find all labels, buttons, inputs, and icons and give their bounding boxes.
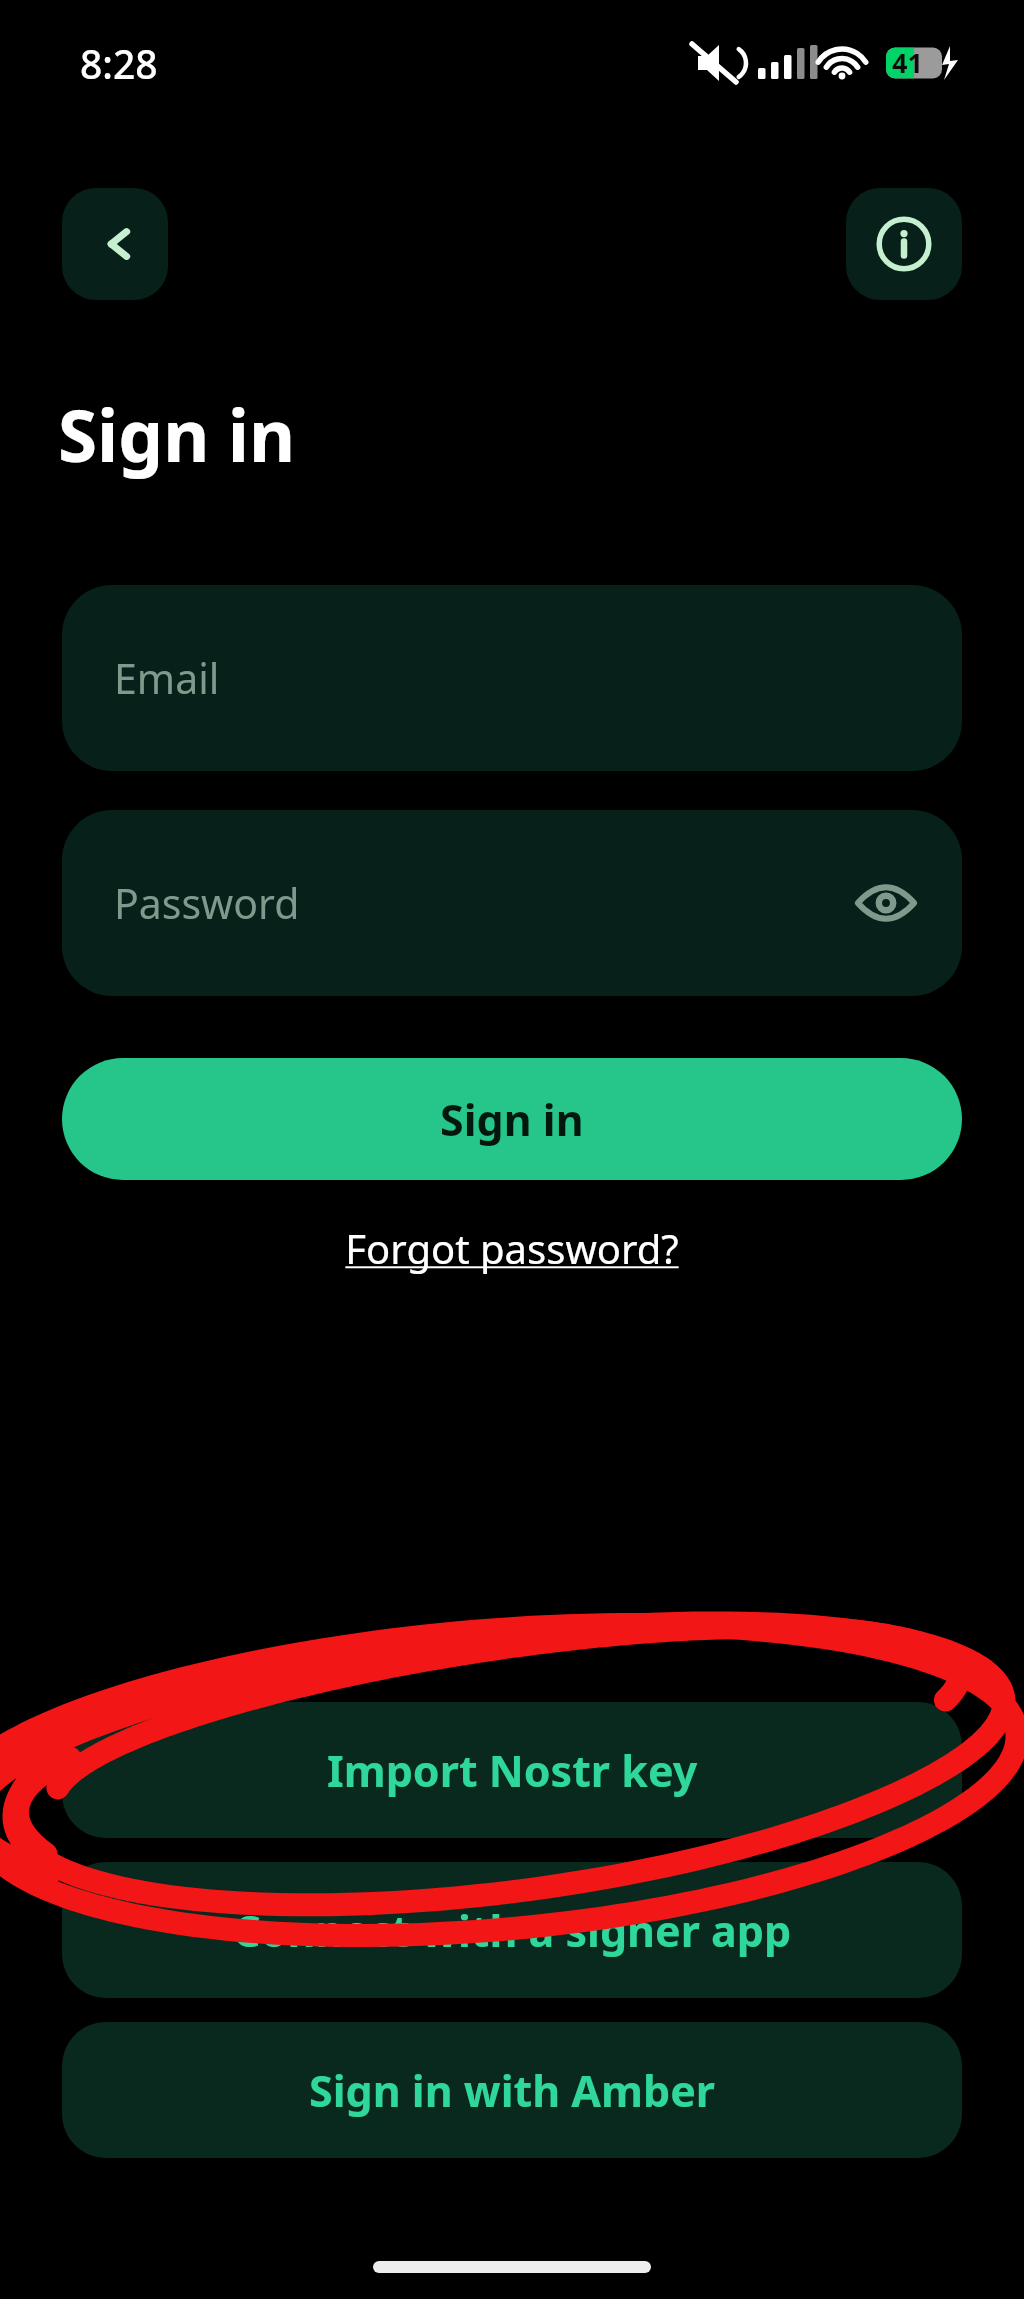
button[interactable]: Forgot password? bbox=[0, 1208, 1024, 1288]
staticText: Sign in bbox=[440, 1090, 584, 1149]
button[interactable]: Sign in with Amber bbox=[62, 2022, 962, 2158]
staticText: Sign in bbox=[58, 386, 296, 483]
staticText: 41 bbox=[892, 44, 923, 81]
button[interactable]: Connect with a signer app bbox=[62, 1862, 962, 1998]
staticText: Connect with a signer app bbox=[233, 1901, 792, 1960]
button[interactable]: Show password bbox=[848, 865, 924, 941]
staticText: Email bbox=[114, 650, 220, 706]
button[interactable]: Email bbox=[62, 585, 962, 771]
staticText: Sign in with Amber bbox=[309, 2061, 716, 2120]
button[interactable]: Back bbox=[62, 188, 168, 300]
staticText: Forgot password? bbox=[345, 1221, 679, 1275]
staticText: Import Nostr key bbox=[327, 1741, 698, 1800]
staticText: Password bbox=[114, 875, 300, 931]
button[interactable]: Information bbox=[846, 188, 962, 300]
button[interactable]: Sign in bbox=[62, 1058, 962, 1180]
button[interactable]: Password bbox=[62, 810, 962, 996]
staticText: 8:28 bbox=[80, 37, 158, 90]
button[interactable]: Import Nostr key bbox=[62, 1702, 962, 1838]
